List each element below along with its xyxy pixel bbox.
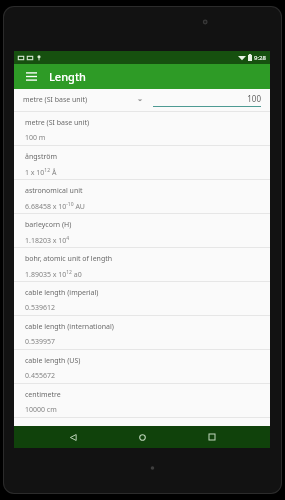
staticText: bohr, atomic unit of length [25, 254, 113, 264]
button[interactable]: metre (SI base unit) [14, 111, 270, 145]
staticText: 0.455672 [25, 371, 55, 381]
button[interactable]: chain (Gunter's; Surveyor's) [14, 417, 270, 426]
staticText: 0.539612 [25, 303, 55, 313]
staticText: 0.539957 [25, 337, 55, 347]
staticText: 1 x 1012 Å [25, 167, 57, 177]
staticText: 100 [153, 93, 261, 104]
staticText: 1.89035 x 1012 a0 [25, 269, 82, 279]
staticText: ångström [25, 152, 57, 162]
button[interactable]: Recent apps [201, 426, 223, 448]
button[interactable]: bohr, atomic unit of length [14, 247, 270, 281]
button[interactable]: cable length (imperial) [14, 281, 270, 315]
staticText: metre (SI base unit) [25, 118, 90, 128]
staticText: 9:28 [254, 54, 266, 62]
button[interactable]: Open navigation menu [22, 67, 41, 86]
button[interactable]: ångström [14, 145, 270, 179]
staticText: 10000 cm [25, 405, 57, 415]
staticText: astronomical unit [25, 186, 83, 196]
button[interactable]: Home [131, 426, 153, 448]
staticText: cable length (international) [25, 322, 114, 332]
button[interactable]: astronomical unit [14, 179, 270, 213]
staticText: barleycorn (H) [25, 220, 72, 230]
button[interactable]: centimetre [14, 383, 270, 417]
staticText: Length [49, 69, 87, 84]
button[interactable]: barleycorn (H) [14, 213, 270, 247]
button[interactable]: Back [62, 426, 84, 448]
button[interactable]: metre (SI base unit) [14, 89, 270, 111]
staticText: 6.68458 x 10-10 AU [25, 201, 85, 211]
button[interactable]: cable length (international) [14, 315, 270, 349]
button[interactable]: cable length (US) [14, 349, 270, 383]
staticText: 1.18203 x 104 [25, 235, 70, 245]
staticText: centimetre [25, 390, 61, 400]
staticText: 100 m [25, 133, 46, 143]
staticText: cable length (US) [25, 356, 81, 366]
staticText: cable length (imperial) [25, 288, 99, 298]
staticText: metre (SI base unit) [23, 95, 137, 105]
